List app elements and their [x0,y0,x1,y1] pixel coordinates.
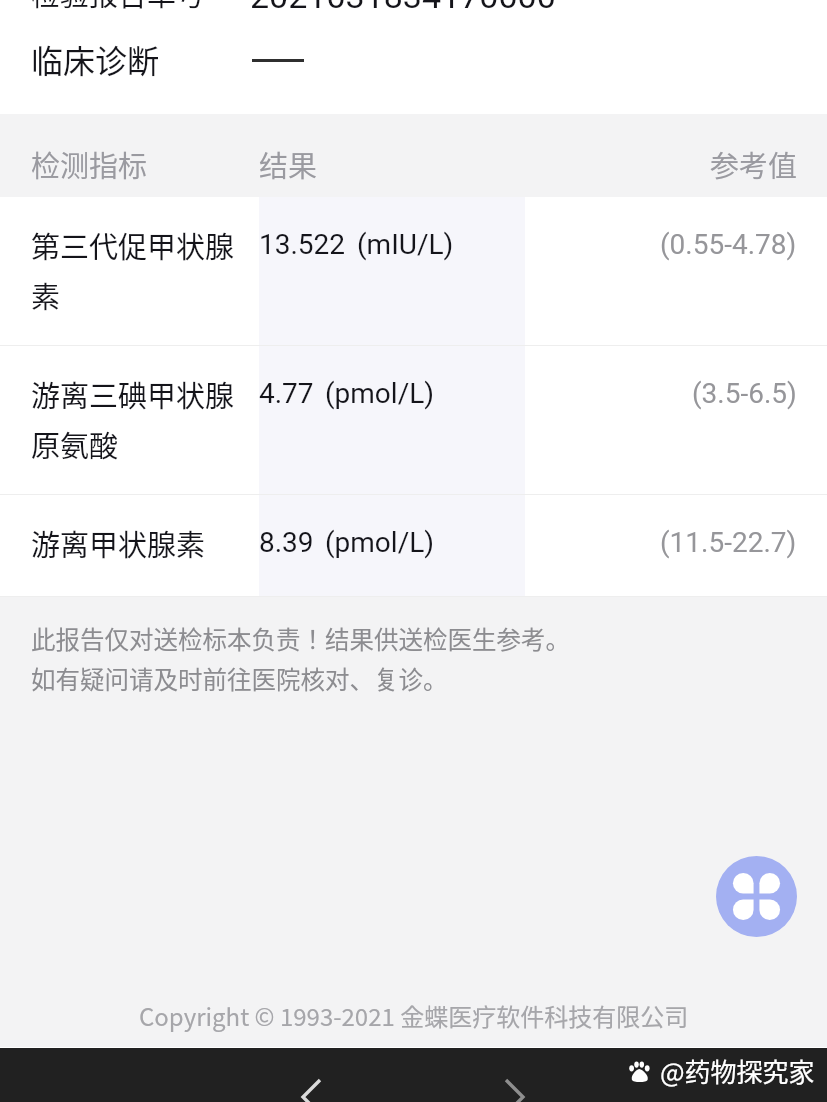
staticText: 13.522 [259,228,346,261]
staticText: (11.5-22.7) [660,526,797,559]
button[interactable]: 游离三碘甲状腺 [0,346,827,495]
button[interactable]: Quick actions [716,856,797,937]
button[interactable]: 第三代促甲状腺 [0,197,827,346]
button[interactable]: 游离甲状腺素 [0,495,827,597]
staticText: 8.39 [259,526,314,559]
button[interactable]: Forward [505,1069,545,1102]
button[interactable]: Back [288,1069,328,1102]
staticText: 第三代促甲状腺 [31,224,235,266]
staticText: 检验报告单号 [31,0,206,14]
staticText: 游离甲状腺素 [31,522,206,564]
staticText: 游离三碘甲状腺 [31,373,235,415]
staticText: (3.5-6.5) [692,377,797,410]
staticText: 此报告仅对送检标本负责！结果供送检医生参考。 [31,621,570,656]
staticText: (0.55-4.78) [660,228,797,261]
staticText: (pmol/L) [325,526,435,559]
staticText: 结果 [259,143,318,185]
staticText: 临床诊断 [31,36,160,82]
staticText: @药物探究家 [660,1052,815,1090]
staticText: 原氨酸 [31,423,119,465]
staticText: Copyright © 1993-2021 金蝶医疗软件科技有限公司 [139,998,689,1033]
staticText: 2021031834170000 [250,0,556,16]
staticText: 参考值 [710,143,798,185]
staticText: (mIU/L) [357,228,454,261]
staticText: 素 [31,274,61,316]
staticText: (pmol/L) [325,377,435,410]
staticText: 如有疑问请及时前往医院核对、复诊。 [31,661,448,696]
staticText: 4.77 [259,377,314,410]
staticText: 检测指标 [31,143,148,185]
